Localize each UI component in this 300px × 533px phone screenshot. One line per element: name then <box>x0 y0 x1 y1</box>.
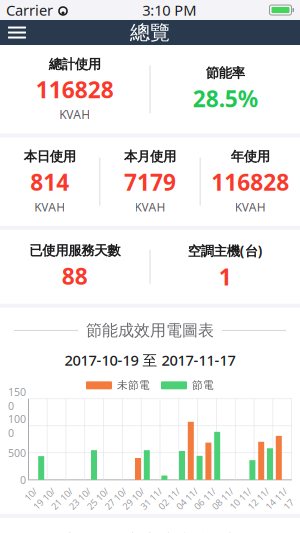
staticText: KVAH <box>134 199 165 215</box>
staticText: Carrier <box>6 0 53 20</box>
staticText: 本日使用 <box>24 148 76 165</box>
staticText: 已使用服務天數 <box>29 242 120 259</box>
staticText: 11/06 <box>189 486 202 511</box>
staticText: 11/17 <box>279 486 292 511</box>
staticText: 10/23 <box>64 486 77 511</box>
staticText: 0 <box>20 473 26 487</box>
staticText: 10/21 <box>46 486 59 511</box>
staticText: 2017-10-19 至 2017-11-17 <box>64 350 235 370</box>
staticText: 116828 <box>36 74 114 104</box>
staticText: 1000 <box>8 412 26 440</box>
staticText: 814 <box>30 167 69 197</box>
staticText: 11/10 <box>225 486 238 511</box>
staticText: 500 <box>8 446 26 460</box>
staticText: 本月使用 <box>124 148 176 165</box>
staticText: 10/31 <box>136 486 149 511</box>
staticText: 總計使用 <box>49 56 101 72</box>
staticText: KVAH <box>34 199 65 215</box>
staticText: KVAH <box>59 106 90 122</box>
staticText: 年使用 <box>231 148 270 165</box>
staticText: 28.5% <box>193 83 258 113</box>
button[interactable]: Menu <box>0 20 34 45</box>
staticText: 10/19 <box>28 486 41 511</box>
staticText: 11/14 <box>261 486 274 511</box>
staticText: 未節電 <box>117 379 150 392</box>
staticText: 11/04 <box>171 486 184 511</box>
staticText: 空調主機(台) <box>188 242 263 259</box>
staticText: 10/29 <box>118 486 131 511</box>
staticText: 11/12 <box>243 486 256 511</box>
staticText: 總覽 <box>130 20 170 45</box>
staticText: 3:10 PM <box>142 0 196 20</box>
staticText: 節電 <box>192 379 214 392</box>
staticText: 1 <box>219 261 232 292</box>
staticText: 88 <box>62 261 88 291</box>
staticText: 節能成效用電圖表 <box>86 321 214 340</box>
staticText: 7179 <box>124 167 176 197</box>
staticText: 1500 <box>8 385 26 413</box>
staticText: 11/02 <box>153 486 166 511</box>
staticText: 節能率 <box>206 65 245 81</box>
staticText: 10/27 <box>100 486 113 511</box>
staticText: 11/08 <box>207 486 220 511</box>
staticText: KVAH <box>235 199 266 215</box>
staticText: 10/25 <box>82 486 95 511</box>
staticText: 116828 <box>211 167 289 197</box>
